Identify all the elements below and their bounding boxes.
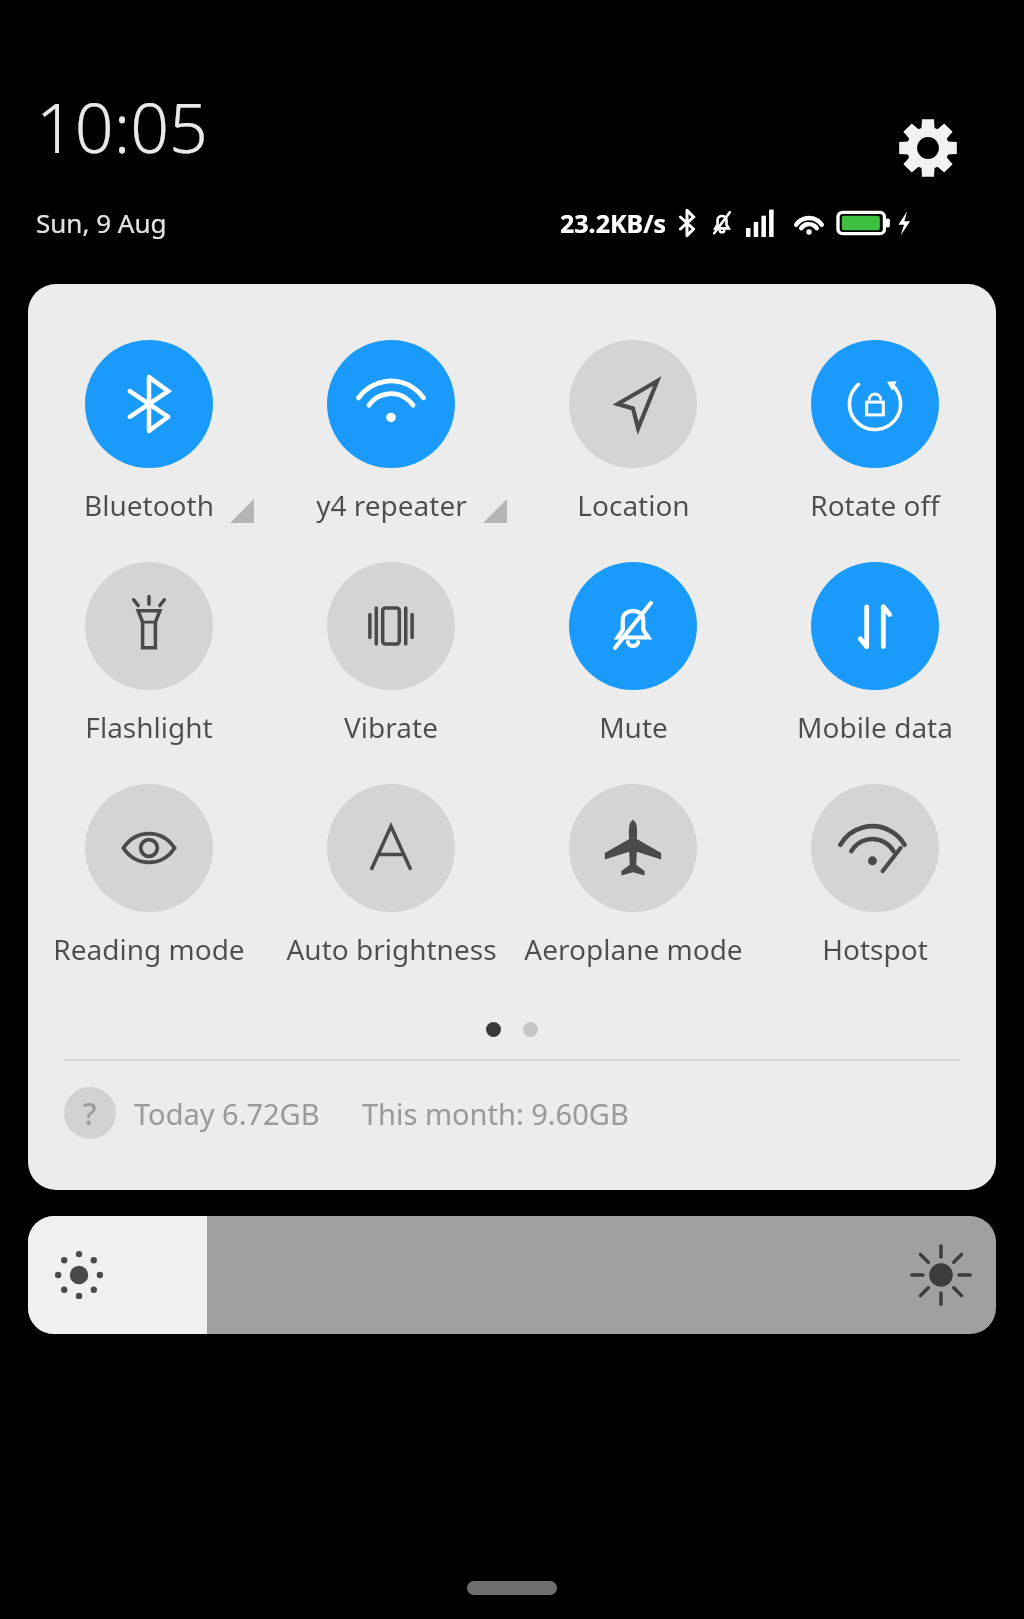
staticText: Flashlight [85,708,213,746]
button[interactable]: Rotate off [754,340,996,524]
button[interactable]: Mute [512,562,754,746]
staticText: Hotspot [822,930,928,968]
button[interactable]: Brightness [28,1216,996,1334]
staticText: Aeroplane mode [524,930,743,968]
staticText: 10:05 [36,80,208,173]
button[interactable]: Mobile data [754,562,996,746]
staticText: Bluetooth [84,486,214,524]
button[interactable]: Bluetooth [28,340,270,524]
staticText: Rotate off [810,486,940,524]
button[interactable]: Flashlight [28,562,270,746]
staticText: y4 repeater [316,486,467,524]
staticText: Reading mode [53,930,245,968]
button[interactable]: Reading mode [28,784,270,968]
staticText: Today 6.72GB [134,1094,320,1133]
staticText: Location [577,486,690,524]
staticText: This month: 9.60GB [362,1094,629,1133]
button[interactable]: Data usage info [64,1087,116,1139]
button[interactable]: Settings [896,116,960,180]
staticText: Sun, 9 Aug [36,205,167,240]
button[interactable]: Aeroplane mode [512,784,754,968]
staticText: Mobile data [797,708,953,746]
staticText: ? [83,1093,97,1134]
staticText: Auto brightness [286,930,497,968]
button[interactable]: Auto brightness [270,784,512,968]
staticText: Mute [599,708,668,746]
button[interactable]: Hotspot [754,784,996,968]
button[interactable]: Vibrate [270,562,512,746]
staticText: Vibrate [344,708,438,746]
button[interactable]: y4 repeater [270,340,512,524]
button[interactable]: Location [512,340,754,524]
staticText: 23.2KB/s [560,206,667,240]
